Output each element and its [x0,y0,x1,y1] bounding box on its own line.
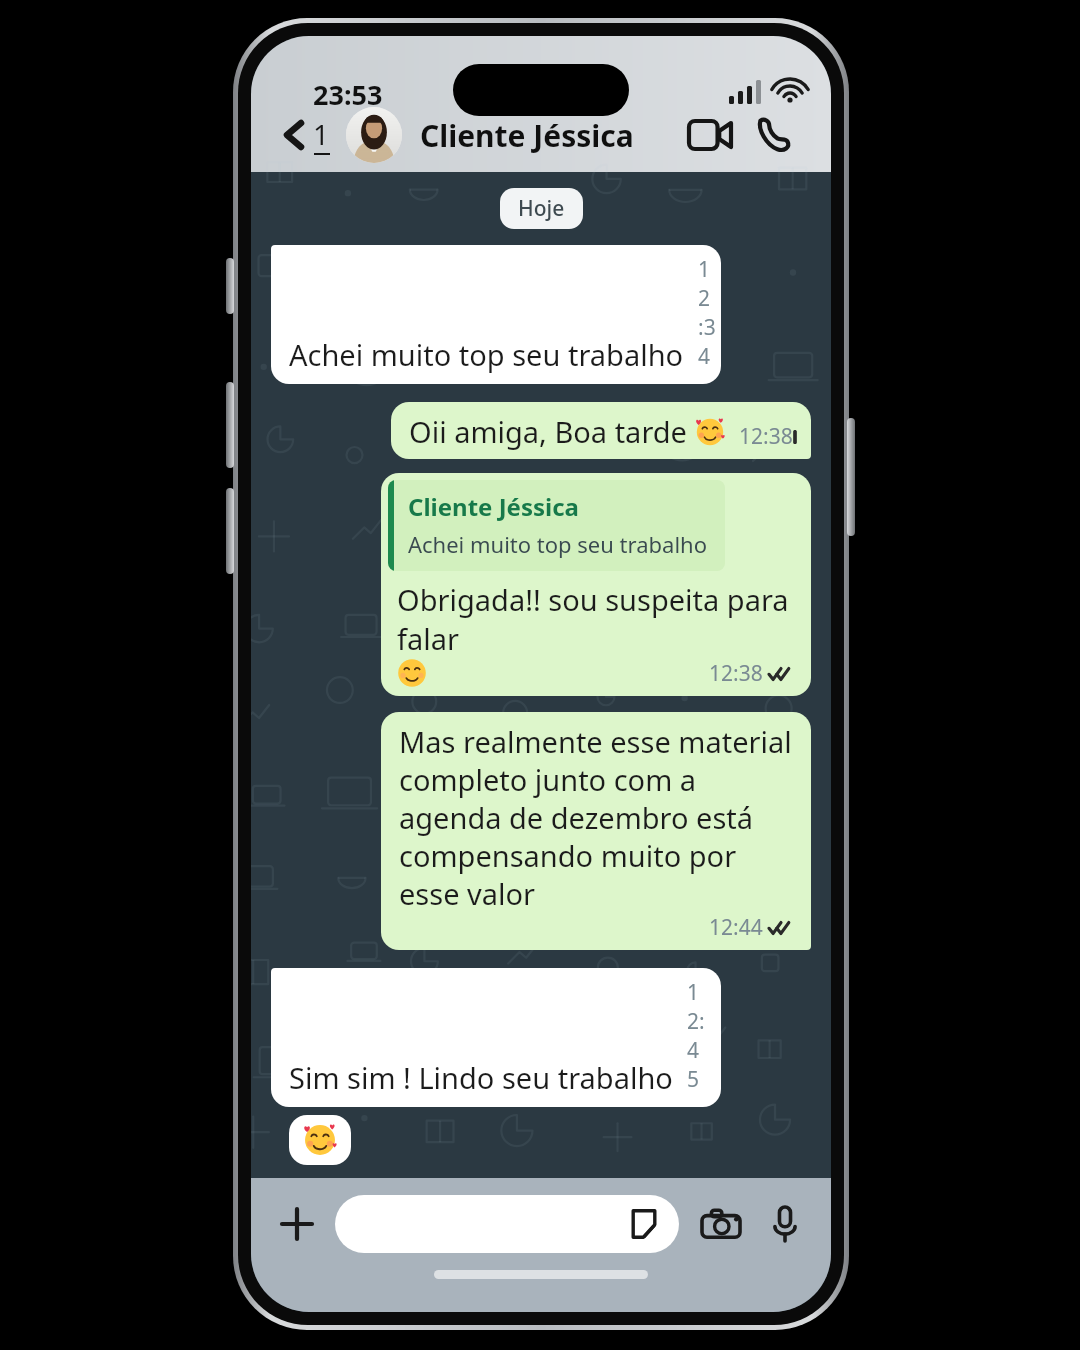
button[interactable]: Cliente Jéssica [420,115,634,156]
staticText: Oii amiga, Boa tarde [409,412,695,451]
button[interactable]: Oii amiga, Boa tarde [391,402,811,459]
button[interactable]: Back [279,111,334,159]
button[interactable]: Mas realmente esse material completo jun… [381,712,811,950]
staticText: Obrigada!! sou suspeita para falar [397,580,795,658]
staticText: Cliente Jéssica [408,490,579,523]
staticText: 12:34 [698,255,705,371]
button[interactable]: Achei muito top seu trabalho [271,245,721,384]
button[interactable]: Contact photo [346,107,402,163]
staticText: 1 [313,115,330,153]
staticText: 12:44 [709,913,763,942]
staticText: 23:53 [313,76,383,113]
staticText: 12:38 [739,422,793,451]
button[interactable]: Camera [695,1198,747,1250]
button[interactable]: Video call [683,108,737,162]
button[interactable]: Hoje [500,188,583,229]
button[interactable]: Cliente Jéssica [381,473,811,696]
button[interactable]: Message [335,1195,679,1253]
button[interactable]: Voice call [747,108,801,162]
staticText: Sim sim ! Lindo seu trabalho [289,1058,673,1097]
staticText: Achei muito top seu trabalho [289,335,684,374]
button[interactable]: Voice message [759,1198,811,1250]
button[interactable]: Attach [271,1198,323,1250]
staticText: Achei muito top seu trabalho [408,529,707,559]
staticText: 12:45 [687,978,705,1094]
button[interactable]: Sim sim ! Lindo seu trabalho [271,968,721,1107]
staticText: 12:38 [709,659,763,688]
staticText: Hoje [518,194,565,223]
staticText: Mas realmente esse material completo jun… [399,722,795,913]
button[interactable] [289,1115,351,1165]
